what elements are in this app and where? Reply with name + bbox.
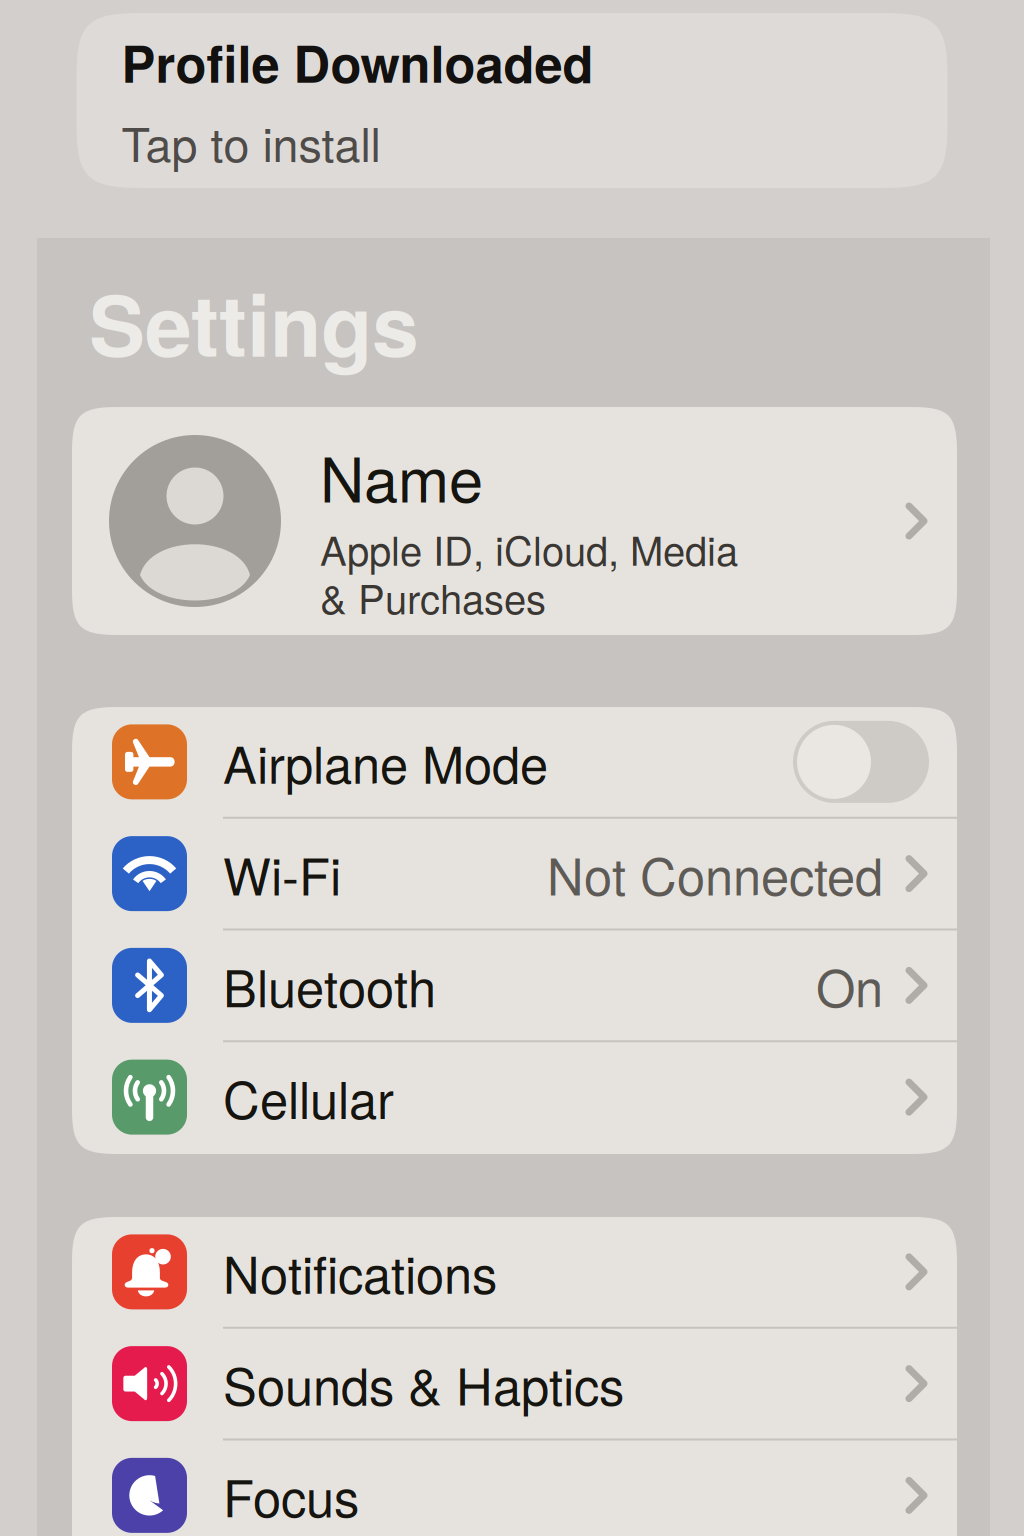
- button[interactable]: Profile Downloaded: [76, 0, 947, 188]
- staticText: Wi-Fi: [223, 837, 341, 910]
- staticText: Bluetooth: [223, 949, 436, 1022]
- button[interactable]: Airplane Mode: [72, 707, 957, 819]
- button[interactable]: Cellular: [72, 1042, 957, 1154]
- staticText: Tap to install: [121, 108, 380, 175]
- staticText: Settings: [89, 262, 419, 383]
- staticText: Not Connected: [547, 837, 883, 910]
- staticText: Profile Downloaded: [121, 26, 593, 98]
- button[interactable]: Focus: [72, 1440, 957, 1536]
- button[interactable]: Name: [72, 407, 957, 635]
- staticText: Focus: [223, 1459, 359, 1532]
- button[interactable]: Sounds & Haptics: [72, 1329, 957, 1441]
- staticText: On: [816, 949, 883, 1022]
- button[interactable]: Wi-Fi: [72, 819, 957, 931]
- button[interactable]: Notifications: [72, 1217, 957, 1329]
- staticText: Notifications: [223, 1236, 497, 1308]
- staticText: Sounds & Haptics: [223, 1347, 624, 1420]
- staticText: Cellular: [223, 1061, 394, 1133]
- staticText: Apple ID, iCloud, Media & Purchases: [320, 520, 738, 625]
- staticText: Airplane Mode: [223, 726, 548, 798]
- button[interactable]: Bluetooth: [72, 930, 957, 1042]
- staticText: Name: [320, 432, 483, 520]
